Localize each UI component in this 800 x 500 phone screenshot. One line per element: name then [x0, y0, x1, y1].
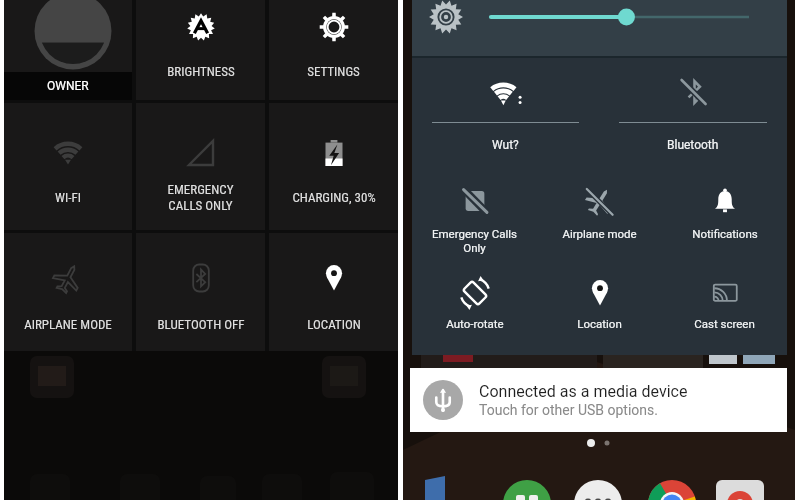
button[interactable]: CHARGING, 30%: [269, 103, 398, 230]
staticText: Touch for other USB options.: [479, 402, 658, 418]
staticText: BLUETOOTH OFF: [157, 317, 245, 332]
button[interactable]: AIRPLANE MODE: [4, 233, 132, 351]
button[interactable]: Bluetooth: [599, 58, 787, 166]
staticText: Cast screen: [694, 317, 755, 330]
staticText: AIRPLANE MODE: [24, 317, 112, 332]
button[interactable]: Airplane mode: [537, 166, 662, 258]
button[interactable]: BRIGHTNESS: [136, 0, 265, 100]
button[interactable]: OWNER: [4, 0, 132, 100]
button[interactable]: SETTINGS: [269, 0, 398, 100]
button[interactable]: Wut?: [412, 58, 599, 166]
staticText: SETTINGS: [307, 64, 360, 79]
staticText: Wut?: [492, 138, 519, 152]
staticText: Emergency Calls Only: [432, 227, 517, 255]
staticText: LOCATION: [307, 317, 361, 332]
button[interactable]: Emergency Calls Only: [412, 166, 537, 258]
staticText: EMERGENCY CALLS ONLY: [167, 182, 234, 213]
staticText: BRIGHTNESS: [167, 64, 235, 79]
button[interactable]: LOCATION: [269, 233, 398, 351]
button[interactable]: Notifications: [662, 166, 787, 258]
staticText: OWNER: [47, 79, 89, 93]
button[interactable]: Cast screen: [662, 258, 787, 348]
button[interactable]: BLUETOOTH OFF: [136, 233, 265, 351]
button[interactable]: Auto-rotate: [412, 258, 537, 348]
button[interactable]: EMERGENCY CALLS ONLY: [136, 103, 265, 230]
staticText: CHARGING, 30%: [292, 190, 376, 205]
button[interactable]: Connected as a media device: [410, 368, 787, 432]
button[interactable]: WI-FI: [4, 103, 132, 230]
staticText: Connected as a media device: [479, 382, 688, 401]
staticText: Location: [577, 317, 622, 330]
staticText: Notifications: [692, 227, 758, 240]
button[interactable]: Location: [537, 258, 662, 348]
staticText: WI-FI: [55, 190, 81, 205]
staticText: Auto-rotate: [446, 317, 504, 330]
staticText: Bluetooth: [667, 138, 719, 152]
staticText: Airplane mode: [562, 227, 637, 240]
